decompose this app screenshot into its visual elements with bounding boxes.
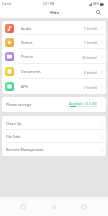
button[interactable]: Phone storage [2, 97, 106, 112]
staticText: 1 item(s) [84, 26, 98, 30]
staticText: File Safe [6, 134, 21, 139]
staticText: 88% [93, 2, 99, 6]
button[interactable]: Picture [2, 49, 106, 64]
staticText: Videos [21, 40, 33, 45]
button[interactable]: Recents [78, 201, 90, 213]
staticText: Picture [21, 54, 34, 59]
staticText: 7 item(s) [84, 85, 98, 89]
button[interactable]: Back [17, 201, 29, 213]
staticText: Files [50, 10, 59, 15]
staticText: 5:01 PM [43, 2, 55, 6]
button[interactable]: Remote Management [2, 143, 106, 156]
staticText: Clean Up [6, 121, 22, 126]
button[interactable]: File Safe [2, 130, 106, 143]
button[interactable]: Home [48, 201, 60, 213]
staticText: APK [21, 84, 28, 89]
button[interactable]: Audio [2, 21, 106, 35]
staticText: 1 item(s) [84, 40, 98, 44]
staticText: Phone storage [6, 102, 32, 107]
button[interactable]: Documents [2, 64, 106, 79]
staticText: Carrier [2, 2, 12, 6]
button[interactable]: Clean Up [2, 116, 106, 130]
staticText: 30 item(s) [82, 55, 98, 59]
staticText: 8 item(s) [84, 70, 98, 74]
button[interactable]: Search [94, 8, 103, 17]
button[interactable]: APK [2, 79, 106, 94]
staticText: Audio [21, 26, 32, 31]
staticText: Available: 16.5 GB [69, 101, 97, 105]
staticText: Documents [21, 69, 41, 74]
staticText: Remote Management [6, 147, 44, 152]
button[interactable]: Videos [2, 35, 106, 49]
